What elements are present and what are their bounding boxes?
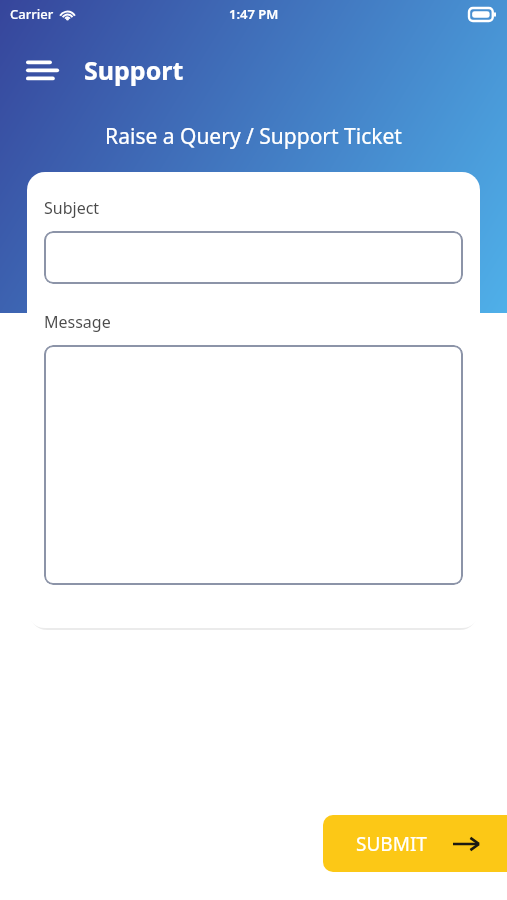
button[interactable]: Open navigation menu — [18, 44, 70, 96]
staticText: Raise a Query / Support Ticket — [0, 122, 507, 151]
staticText: Message — [44, 311, 111, 333]
button[interactable]: SUBMIT — [323, 815, 507, 872]
staticText: SUBMIT — [356, 831, 427, 857]
button[interactable]: Subject input field — [44, 231, 463, 284]
staticText: Carrier — [10, 5, 54, 23]
button[interactable]: Message input field — [44, 345, 463, 585]
staticText: 1:47 PM — [229, 5, 279, 23]
staticText: Subject — [44, 197, 100, 219]
staticText: Support — [84, 53, 184, 87]
